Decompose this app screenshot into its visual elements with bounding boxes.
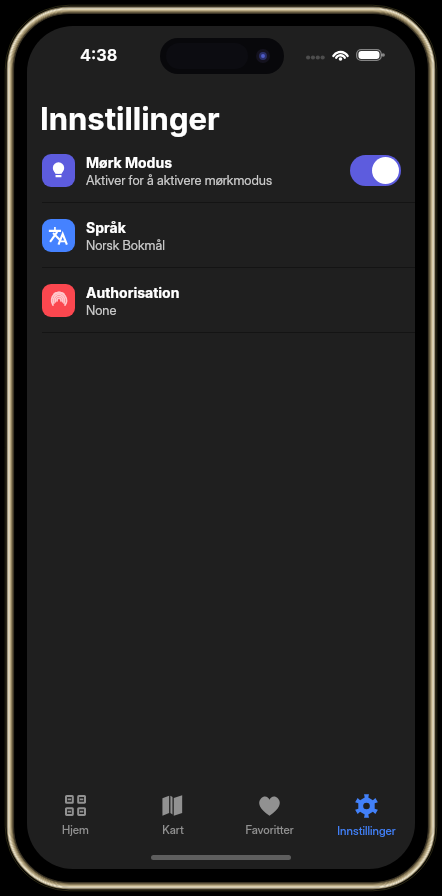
staticText: Norsk Bokmål <box>86 237 165 253</box>
staticText: Hjem <box>62 823 89 837</box>
button[interactable]: Mørk Modus <box>27 138 415 202</box>
staticText: Kart <box>162 823 184 837</box>
staticText: Innstillinger <box>337 824 396 838</box>
staticText: Mørk Modus <box>86 154 172 171</box>
button[interactable]: Toggle dark mode <box>350 155 401 186</box>
button[interactable]: Favoritter <box>221 787 318 843</box>
button[interactable]: Authorisation <box>27 268 415 332</box>
staticText: Aktiver for å aktivere mørkmodus <box>86 172 273 188</box>
staticText: Authorisation <box>86 284 180 301</box>
staticText: 4:38 <box>80 45 118 65</box>
staticText: Favoritter <box>245 823 294 837</box>
button[interactable]: Innstillinger <box>318 787 415 843</box>
staticText: Innstillinger <box>40 100 220 138</box>
button[interactable]: Språk <box>27 203 415 267</box>
staticText: Språk <box>86 219 126 236</box>
button[interactable]: Kart <box>124 787 221 843</box>
button[interactable]: Hjem <box>27 787 124 843</box>
staticText: None <box>86 302 117 318</box>
